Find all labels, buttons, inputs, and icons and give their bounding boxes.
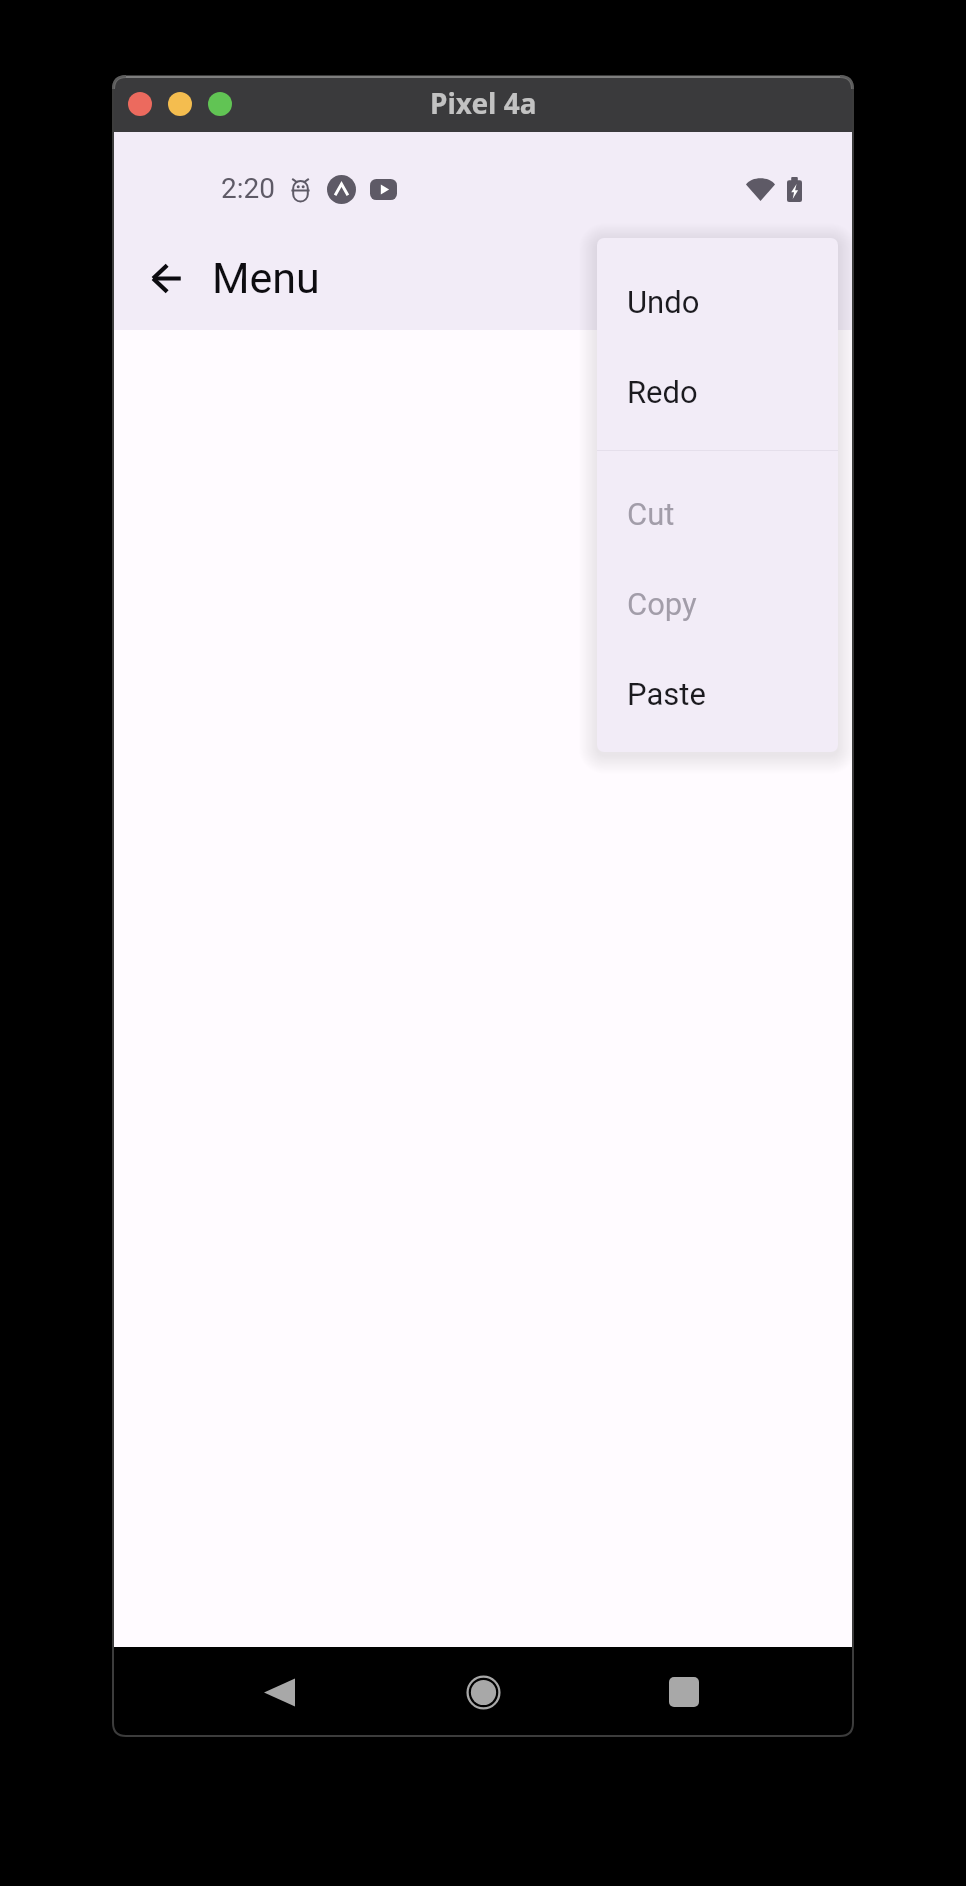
button[interactable]: Paste (597, 649, 838, 739)
staticText: 2:20 (221, 172, 275, 205)
staticText: Cut (627, 496, 675, 532)
button[interactable]: Recent apps (650, 1658, 718, 1726)
button[interactable]: Navigate up (134, 246, 198, 310)
button[interactable]: Home (449, 1658, 517, 1726)
staticText: Pixel 4a (430, 84, 537, 122)
staticText: Copy (627, 586, 697, 622)
button[interactable]: Back (245, 1658, 313, 1726)
button[interactable]: Copy (597, 559, 838, 649)
staticText: Undo (627, 284, 700, 320)
staticText: Paste (627, 676, 706, 712)
staticText: Menu (212, 253, 320, 303)
button[interactable]: Undo (597, 257, 838, 347)
button[interactable]: Redo (597, 347, 838, 437)
button[interactable]: Cut (597, 469, 838, 559)
staticText: Redo (627, 374, 698, 410)
